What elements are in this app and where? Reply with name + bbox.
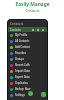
button[interactable]: Favorites — [8, 50, 47, 56]
staticText: Recent Calls — [15, 63, 30, 67]
staticText: Easily Manage — [15, 1, 50, 8]
button[interactable]: My Profile — [8, 32, 47, 38]
staticText: Duplicates — [15, 81, 28, 85]
staticText: Contacts — [10, 22, 24, 26]
staticText: Import Data — [15, 69, 30, 73]
button[interactable]: Backup Now — [8, 86, 47, 92]
button[interactable]: Add contact — [28, 91, 33, 96]
button[interactable]: More — [41, 92, 46, 97]
button[interactable]: All Contacts — [8, 38, 47, 44]
button[interactable]: Groups — [8, 56, 47, 62]
staticText: All Contacts — [15, 39, 30, 43]
staticText: Export Data — [15, 75, 30, 79]
button[interactable]: Recent Calls — [8, 62, 47, 68]
staticText: Settings — [15, 93, 25, 97]
button[interactable]: Duplicates — [8, 80, 47, 86]
staticText: Groups — [15, 57, 24, 61]
button[interactable]: Settings — [8, 92, 47, 98]
button[interactable]: Export Data — [8, 74, 47, 80]
staticText: Favorites — [15, 51, 27, 55]
staticText: Add Contact — [15, 45, 30, 49]
staticText: Backup Now — [15, 87, 31, 91]
staticText: Contacts — [25, 8, 40, 13]
staticText: My Profile — [15, 33, 28, 37]
button[interactable]: Import Data — [8, 68, 47, 74]
staticText: Contacts — [10, 28, 21, 32]
button[interactable]: Add Contact — [8, 44, 47, 50]
